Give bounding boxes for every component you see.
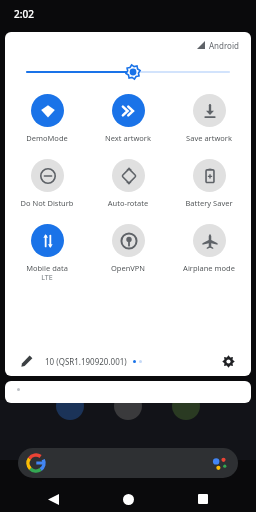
button[interactable]: Search	[18, 448, 238, 478]
staticText: OpenVPN	[89, 263, 167, 273]
staticText: 10 (QSR1.190920.001)	[45, 356, 127, 367]
button[interactable]: Do Not Disturb	[8, 159, 86, 208]
button[interactable]: Edit tiles	[17, 351, 37, 371]
button[interactable]: Settings	[217, 350, 239, 372]
staticText: Mobile data	[8, 263, 86, 273]
button[interactable]: Airplane mode	[170, 224, 248, 273]
button[interactable]: Home	[115, 486, 141, 512]
staticText: Do Not Disturb	[8, 198, 86, 208]
button[interactable]: Back	[40, 486, 66, 512]
staticText: Airplane mode	[170, 263, 248, 273]
button[interactable]: Recents	[190, 486, 216, 512]
button[interactable]: OpenVPN	[89, 224, 167, 273]
button[interactable]: DemoMode	[8, 94, 86, 143]
staticText: Android	[209, 40, 239, 51]
button[interactable]: Save artwork	[170, 94, 248, 143]
button[interactable]: Next artwork	[89, 94, 167, 143]
staticText: Save artwork	[170, 133, 248, 143]
button[interactable]: Brightness	[27, 58, 229, 86]
staticText: LTE	[8, 273, 86, 283]
staticText: Battery Saver	[170, 198, 248, 208]
staticText: Next artwork	[89, 133, 167, 143]
staticText: Auto-rotate	[89, 198, 167, 208]
staticText: 2:02	[14, 7, 34, 21]
staticText: DemoMode	[8, 133, 86, 143]
button[interactable]: Battery Saver	[170, 159, 248, 208]
button[interactable]: Auto-rotate	[89, 159, 167, 208]
button[interactable]: Mobile data	[8, 224, 86, 283]
